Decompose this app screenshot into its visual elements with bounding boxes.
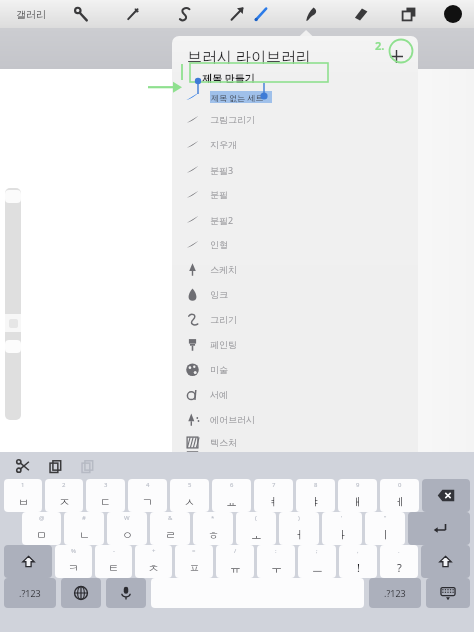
button[interactable]: ? — [380, 545, 418, 578]
button[interactable]: Copy — [45, 456, 65, 476]
button[interactable]: Adjustments — [70, 3, 92, 25]
button[interactable]: 페인팅 — [172, 332, 418, 357]
button[interactable]: 텍스처 — [172, 432, 418, 452]
button[interactable]: ㅕ — [254, 479, 293, 512]
button[interactable]: Selection — [174, 3, 196, 25]
staticText: # — [82, 514, 86, 522]
staticText: ㅁ — [36, 528, 47, 542]
button[interactable]: Brush size slider — [5, 188, 21, 420]
button[interactable]: Color — [444, 5, 462, 23]
button[interactable]: 스케치 — [172, 257, 418, 282]
button[interactable]: ㅔ — [380, 479, 419, 512]
button[interactable]: Paint brush — [250, 3, 272, 25]
button[interactable]: Smudge — [300, 3, 322, 25]
staticText: 그리기 — [210, 314, 237, 325]
button[interactable]: ㄱ — [128, 479, 167, 512]
button[interactable]: Cut — [13, 456, 33, 476]
staticText: 4 — [146, 481, 150, 489]
button[interactable]: ㅠ — [216, 545, 254, 578]
button[interactable]: Language — [61, 578, 101, 608]
button[interactable]: Numbers — [4, 578, 56, 608]
staticText: ㅣ — [380, 528, 391, 542]
button[interactable]: ㅣ — [365, 512, 405, 545]
staticText: ? — [397, 560, 402, 575]
staticText: ㅂ — [18, 495, 29, 509]
staticText: ㅍ — [189, 561, 200, 575]
button[interactable]: 서예 — [172, 382, 418, 407]
button[interactable]: 그리기 — [172, 307, 418, 332]
staticText: ㅓ — [294, 528, 305, 542]
button[interactable]: 인형 — [172, 232, 418, 257]
staticText: 5 — [188, 481, 192, 489]
button[interactable]: ㅍ — [175, 545, 213, 578]
staticText: ' — [341, 514, 343, 522]
button[interactable]: 미술 — [172, 357, 418, 382]
button[interactable]: ㅛ — [212, 479, 251, 512]
button[interactable]: ㅡ — [298, 545, 336, 578]
staticText: ㅇ — [122, 528, 133, 542]
staticText: 9 — [356, 481, 360, 489]
button[interactable]: ㅇ — [107, 512, 147, 545]
button[interactable]: Backspace — [422, 479, 470, 512]
staticText: ㅌ — [108, 561, 119, 575]
button[interactable]: Add brush set — [384, 44, 408, 68]
staticText: ㅎ — [208, 528, 219, 542]
button[interactable]: 제목 없는 세트 — [172, 86, 418, 107]
button[interactable]: ㅁ — [22, 512, 61, 545]
button[interactable]: 분필3 — [172, 157, 418, 182]
button[interactable]: Numbers — [369, 578, 421, 608]
button[interactable]: 그림그리기 — [172, 107, 418, 132]
button[interactable]: ㄷ — [86, 479, 125, 512]
button[interactable]: ㅈ — [45, 479, 83, 512]
button[interactable]: Transform — [226, 3, 248, 25]
button[interactable]: Hide keyboard — [426, 578, 470, 608]
button[interactable]: 분필2 — [172, 207, 418, 232]
button[interactable]: 분필 — [172, 182, 418, 207]
button[interactable]: ㅌ — [95, 545, 132, 578]
button[interactable]: Shift — [421, 545, 470, 578]
button[interactable]: ㄹ — [150, 512, 190, 545]
button[interactable]: 에어브러시 — [172, 407, 418, 432]
staticText: ㅛ — [226, 495, 237, 509]
button[interactable]: ㅏ — [322, 512, 362, 545]
button[interactable]: ㅗ — [236, 512, 276, 545]
button[interactable]: ㅊ — [135, 545, 172, 578]
button[interactable]: ㄴ — [64, 512, 104, 545]
button[interactable]: 갤러리 — [14, 4, 48, 25]
button[interactable]: Return — [408, 512, 470, 545]
staticText: ㅏ — [337, 528, 348, 542]
staticText: & — [168, 514, 173, 522]
button[interactable]: Magic wand — [122, 3, 144, 25]
button[interactable]: ㅎ — [193, 512, 233, 545]
staticText: ㅕ — [268, 495, 279, 509]
staticText: ㄱ — [142, 495, 153, 509]
button[interactable]: Eraser — [350, 3, 372, 25]
button[interactable]: ㅓ — [279, 512, 319, 545]
button[interactable]: Shift — [4, 545, 52, 578]
button[interactable]: Paste — [77, 456, 97, 476]
button[interactable]: ! — [339, 545, 377, 578]
staticText: ㅜ — [271, 561, 282, 575]
staticText: ㄷ — [100, 495, 111, 509]
staticText: % — [71, 547, 76, 555]
button[interactable]: ㅅ — [170, 479, 209, 512]
button[interactable]: ㅋ — [55, 545, 92, 578]
button[interactable]: Layers — [398, 3, 420, 25]
button[interactable]: 잉크 — [172, 282, 418, 307]
button[interactable]: Dictation — [106, 578, 146, 608]
staticText: 서예 — [210, 389, 228, 400]
button[interactable]: ㅑ — [296, 479, 335, 512]
button[interactable]: ㅐ — [338, 479, 377, 512]
staticText: = — [192, 547, 196, 555]
staticText: ㅋ — [68, 561, 79, 575]
button[interactable]: ㅂ — [4, 479, 42, 512]
staticText: ㄹ — [165, 528, 176, 542]
staticText: 6 — [230, 481, 234, 489]
staticText: 미술 — [210, 364, 228, 375]
staticText: ㅊ — [148, 561, 159, 575]
staticText: ㅡ — [312, 561, 323, 575]
staticText: 그림그리기 — [210, 114, 255, 125]
button[interactable]: ㅜ — [257, 545, 295, 578]
button[interactable]: 지우개 — [172, 132, 418, 157]
